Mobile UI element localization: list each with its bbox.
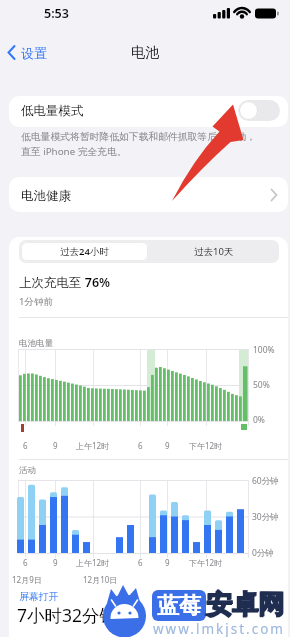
button[interactable] [9,96,288,127]
staticText: 0分钟 [252,547,274,559]
staticText: 安卓网 [206,588,284,621]
button[interactable] [5,41,50,63]
staticText: 30分钟 [252,511,279,523]
staticText: 上次充电至 76% [19,274,110,291]
staticText: 下午12时 [189,557,223,568]
staticText: 电池 [131,44,159,62]
button[interactable]: 过去10天 [149,240,279,263]
staticText: 上午12时 [76,440,110,451]
staticText: 下午12时 [189,440,223,451]
staticText: 100% [253,344,275,356]
staticText: 低电量模式将暂时降低如下载和邮件抓取等后台活动， 直至 iPhone 完全充电。 [21,131,257,158]
button[interactable]: 过去24小时 [21,242,148,261]
staticText: 电池健康 [21,188,71,204]
staticText: 设置 [21,45,47,61]
button[interactable] [9,177,288,212]
staticText: 安卓网 [207,588,285,621]
staticText: 9 [53,440,58,451]
button[interactable] [19,240,149,263]
button[interactable] [238,100,280,121]
staticText: 6 [23,440,28,451]
staticText: 12月9日 [12,574,42,585]
staticText: www.lmkjst.com [153,620,285,637]
staticText: 过去24小时 [60,245,109,258]
staticText: 安卓网 [206,589,284,622]
staticText: 9 [165,440,170,451]
staticText: 9 [53,557,58,568]
staticText: 6 [138,557,143,568]
staticText: 50% [253,379,270,391]
staticText: 12月10日 [83,574,118,585]
staticText: 电池电量 [19,338,53,349]
staticText: 低电量模式 [21,103,84,119]
staticText: 1分钟前 [19,295,53,308]
staticText: 60分钟 [252,475,279,487]
staticText: 0% [253,414,265,426]
staticText: 过去10天 [194,245,234,258]
staticText: 活动 [19,465,36,476]
staticText: 屏幕打开 [19,591,59,603]
staticText: 6 [138,440,143,451]
staticText: 6 [23,557,28,568]
staticText: 7小时32分钟 [17,603,118,627]
staticText: 上午12时 [76,557,110,568]
staticText: 蓝莓 [157,592,201,620]
staticText: 9 [165,557,170,568]
staticText: 5:53 [44,5,69,22]
